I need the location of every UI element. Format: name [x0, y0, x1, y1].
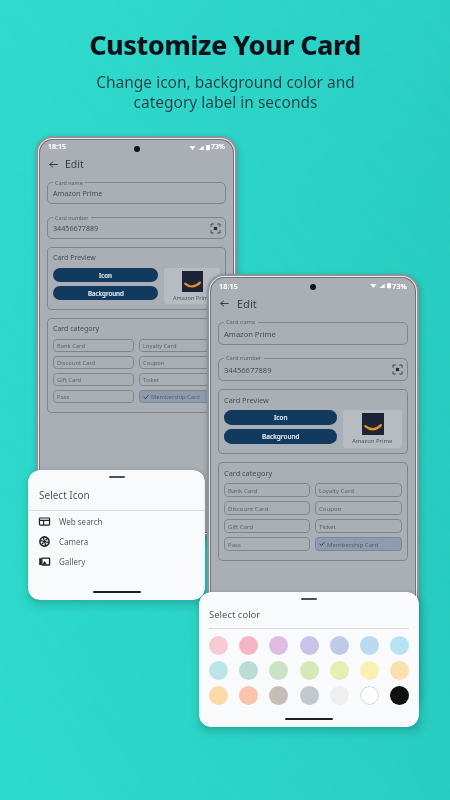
button[interactable]: Color swatch	[209, 661, 228, 680]
button[interactable]: Color swatch	[239, 661, 258, 680]
button[interactable]: Color swatch	[239, 636, 258, 655]
button[interactable]: Loyalty Card	[139, 339, 220, 352]
staticText: Card Preview	[224, 395, 269, 405]
button[interactable]: Color swatch	[269, 686, 288, 705]
button[interactable]: Bank Card	[224, 483, 310, 497]
button[interactable]: Color swatch	[300, 661, 319, 680]
button[interactable]: Icon	[53, 268, 158, 282]
button[interactable]: Color swatch	[330, 686, 349, 705]
button[interactable]	[47, 217, 226, 239]
button[interactable]: Membership Card	[139, 390, 220, 403]
button[interactable]: Discount Card	[224, 501, 310, 515]
button[interactable]: Loyalty Card	[315, 483, 402, 497]
button[interactable]: Icon	[224, 410, 337, 425]
staticText: Amazon Prime	[173, 294, 212, 302]
button[interactable]	[218, 322, 408, 345]
staticText: Pass	[57, 393, 70, 401]
button[interactable]	[47, 182, 226, 204]
button[interactable]: Color swatch	[239, 686, 258, 705]
button[interactable]: Card category	[218, 462, 408, 561]
staticText: Gift Card	[57, 376, 82, 384]
button[interactable]: Color swatch	[390, 686, 409, 705]
button[interactable]	[218, 358, 408, 381]
button[interactable]: Card Preview	[218, 389, 408, 454]
button[interactable]: Color swatch	[330, 636, 349, 655]
staticText: Card name	[226, 318, 256, 326]
staticText: Bank Card	[57, 342, 85, 350]
button[interactable]: Coupon	[315, 501, 402, 515]
staticText: Web search	[59, 516, 103, 527]
button[interactable]: Pass	[53, 390, 134, 403]
button[interactable]: Background	[53, 286, 158, 300]
staticText: 73%	[211, 142, 225, 152]
staticText: Ticket	[319, 522, 336, 530]
button[interactable]: Ticket	[315, 519, 402, 533]
staticText: Change icon, background color and catego…	[96, 71, 355, 113]
staticText: Customize Your Card	[89, 26, 361, 63]
button[interactable]: Gift Card	[53, 373, 134, 386]
staticText: Card number	[226, 354, 262, 362]
button[interactable]: Web search	[28, 511, 205, 531]
staticText: Card number	[55, 214, 89, 221]
staticText: Amazon Prime	[352, 437, 393, 445]
staticText: Edit	[237, 296, 257, 311]
staticText: Loyalty Card	[143, 342, 177, 350]
staticText: Card Preview	[53, 253, 96, 263]
staticText: 73%	[392, 281, 407, 291]
button[interactable]: Ticket	[139, 373, 220, 386]
button[interactable]: Amazon Prime	[164, 268, 220, 304]
button[interactable]: Gift Card	[224, 519, 310, 533]
staticText: Ticket	[143, 376, 159, 384]
staticText: Select color	[209, 608, 261, 621]
button[interactable]: Color swatch	[390, 661, 409, 680]
button[interactable]: Gallery	[28, 551, 205, 571]
staticText: Loyalty Card	[319, 486, 355, 494]
staticText: Card category	[53, 324, 99, 334]
button[interactable]: Amazon Prime	[343, 410, 402, 448]
staticText: 34456677889	[224, 365, 272, 375]
staticText: Icon	[99, 271, 112, 279]
other: Scan card number	[211, 224, 220, 233]
button[interactable]: Color swatch	[360, 661, 379, 680]
staticText: Bank Card	[228, 486, 258, 494]
staticText: Discount Card	[57, 359, 96, 367]
staticText: Pass	[228, 540, 241, 548]
staticText: Icon	[274, 413, 288, 422]
staticText: Gift Card	[228, 522, 254, 530]
staticText: Background	[262, 432, 300, 441]
button[interactable]: Color swatch	[330, 661, 349, 680]
staticText: Coupon	[319, 504, 342, 512]
staticText: Membership Card	[151, 393, 200, 401]
staticText: Edit	[65, 157, 84, 171]
staticText: Camera	[59, 536, 89, 547]
button[interactable]: Card category	[47, 318, 226, 413]
button[interactable]: Discount Card	[53, 356, 134, 369]
button[interactable]: Color swatch	[269, 636, 288, 655]
button[interactable]: Camera	[28, 531, 205, 551]
staticText: Amazon Prime	[53, 188, 103, 198]
button[interactable]: Color swatch	[269, 661, 288, 680]
button[interactable]: Color swatch	[360, 636, 379, 655]
staticText: Coupon	[143, 359, 165, 367]
button[interactable]: Back	[47, 158, 59, 170]
button[interactable]: Background	[224, 429, 337, 444]
button[interactable]: Back	[218, 297, 231, 310]
button[interactable]: Card Preview	[47, 247, 226, 310]
staticText: Select Icon	[39, 488, 90, 502]
button[interactable]: Pass	[224, 537, 310, 551]
button[interactable]: Coupon	[139, 356, 220, 369]
button[interactable]: Color swatch	[360, 686, 379, 705]
staticText: Card category	[224, 468, 273, 478]
button[interactable]: Color swatch	[300, 686, 319, 705]
button[interactable]: Color swatch	[209, 636, 228, 655]
button[interactable]: Color swatch	[209, 686, 228, 705]
button[interactable]: Color swatch	[390, 636, 409, 655]
staticText: Discount Card	[228, 504, 269, 512]
staticText: Membership Card	[327, 540, 379, 548]
staticText: 18:15	[48, 142, 66, 152]
staticText: Card name	[55, 179, 83, 186]
button[interactable]: Bank Card	[53, 339, 134, 352]
button[interactable]: Membership Card	[315, 537, 402, 551]
staticText: 34456677889	[53, 223, 99, 233]
button[interactable]: Color swatch	[300, 636, 319, 655]
